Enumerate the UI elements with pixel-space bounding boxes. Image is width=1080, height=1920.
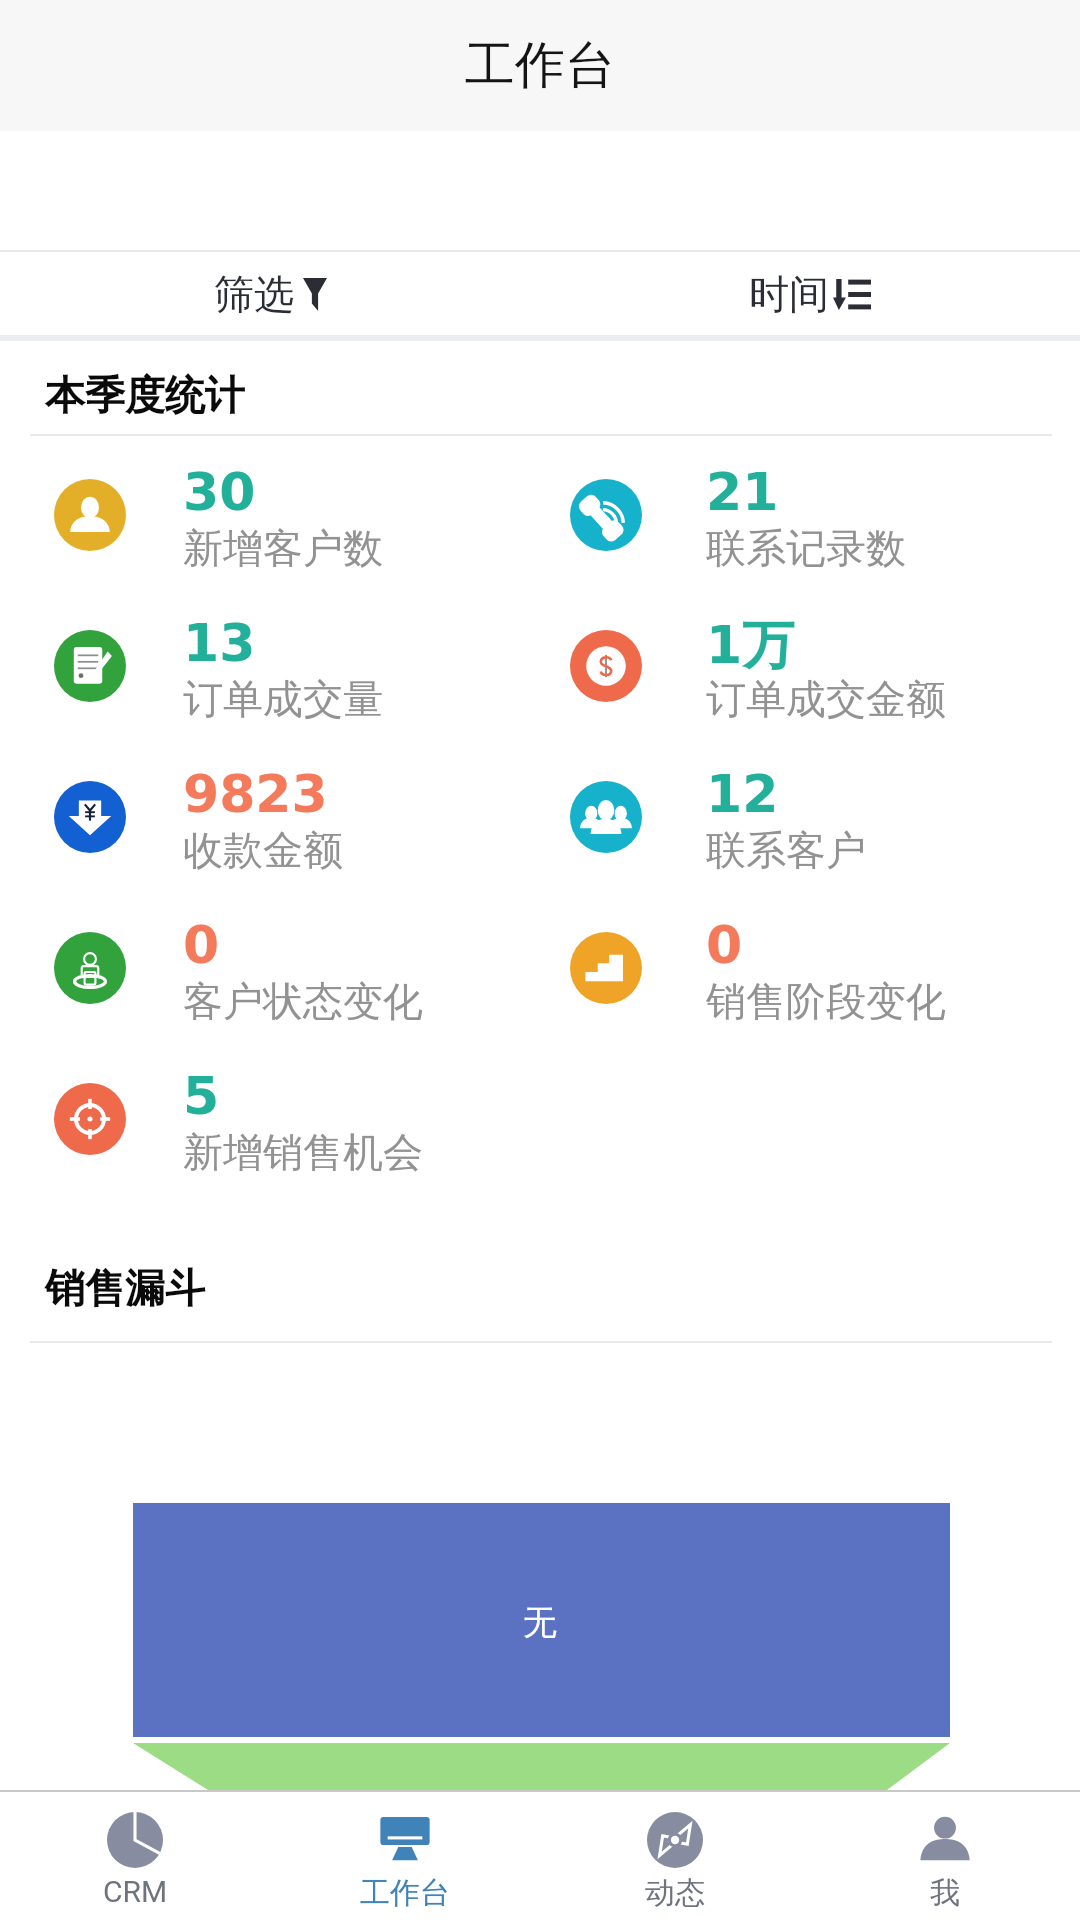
staticText: 30 (183, 462, 256, 523)
staticText: CRM (103, 1874, 168, 1909)
staticText: 客户状态变化 (183, 976, 423, 1026)
button[interactable]: 13 (0, 601, 540, 673)
button[interactable]: 筛选 (0, 269, 540, 319)
staticText: 0 (183, 915, 220, 976)
button[interactable]: 0 (0, 903, 540, 975)
staticText: 联系客户 (706, 825, 866, 875)
button[interactable]: 30 (0, 450, 540, 522)
button[interactable]: 9823 (0, 752, 540, 824)
staticText: 工作台 (360, 1874, 450, 1912)
staticText: 我 (930, 1874, 960, 1912)
staticText: 订单成交量 (183, 674, 383, 724)
staticText: 收款金额 (183, 825, 343, 875)
button[interactable]: 12 (540, 752, 1080, 824)
staticText: 联系记录数 (706, 523, 906, 573)
staticText: 新增客户数 (183, 523, 383, 573)
button[interactable]: 21 (540, 450, 1080, 522)
button[interactable]: 动态 (540, 1792, 810, 1912)
staticText: 筛选 (214, 269, 294, 319)
staticText: 1万 (706, 613, 795, 679)
staticText: 销售漏斗 (45, 1263, 205, 1313)
staticText: 21 (706, 462, 779, 523)
staticText: 12 (706, 764, 779, 825)
button[interactable]: 工作台 (270, 1792, 540, 1912)
button[interactable]: 时间 (540, 269, 1080, 319)
staticText: 5 (183, 1066, 220, 1127)
staticText: 时间 (749, 269, 829, 319)
staticText: 销售阶段变化 (706, 976, 946, 1026)
staticText: 动态 (645, 1874, 705, 1912)
staticText: 无 (523, 1601, 557, 1644)
button[interactable]: 5 (0, 1054, 540, 1126)
staticText: 订单成交金额 (706, 674, 946, 724)
button[interactable]: CRM (0, 1792, 270, 1909)
button[interactable]: 1万 (540, 601, 1080, 673)
staticText: 工作台 (465, 34, 615, 97)
button[interactable]: 0 (540, 903, 1080, 975)
staticText: 本季度统计 (45, 370, 245, 420)
staticText: 0 (706, 915, 743, 976)
staticText: 新增销售机会 (183, 1127, 423, 1177)
staticText: 13 (183, 613, 256, 674)
staticText: 9823 (183, 764, 328, 825)
button[interactable]: 我 (810, 1792, 1080, 1912)
